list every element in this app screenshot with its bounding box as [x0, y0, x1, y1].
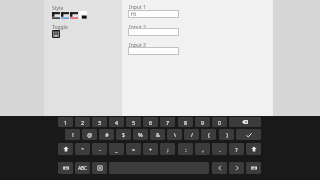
- staticText: !: [72, 131, 74, 138]
- staticText: -: [99, 146, 101, 153]
- button[interactable]: .: [212, 143, 227, 155]
- staticText: +: [149, 146, 152, 153]
- button[interactable]: ABC: [75, 162, 90, 174]
- staticText: %: [138, 131, 143, 138]
- staticText: 4: [115, 119, 118, 126]
- button[interactable]: Text colour: [52, 11, 60, 19]
- staticText: 0: [218, 119, 221, 126]
- staticText: :: [185, 146, 187, 153]
- button[interactable]: Backspace: [229, 117, 261, 127]
- button[interactable]: !: [65, 129, 80, 140]
- staticText: .: [219, 146, 221, 153]
- button[interactable]: 6: [143, 117, 158, 127]
- staticText: 2: [81, 119, 84, 126]
- button[interactable]: Text colour: [61, 11, 69, 19]
- staticText: Input 1: [129, 4, 146, 11]
- button[interactable]: (: [201, 129, 216, 140]
- button[interactable]: Hi: [128, 10, 179, 18]
- staticText: @: [87, 131, 92, 138]
- staticText: #: [105, 131, 109, 138]
- button[interactable]: 1: [58, 117, 73, 127]
- staticText: Style: [52, 5, 64, 12]
- button[interactable]: Highlight colour: [79, 11, 87, 19]
- button[interactable]: Shift: [246, 143, 261, 155]
- staticText: 9: [201, 119, 204, 126]
- staticText: (: [208, 131, 210, 138]
- staticText: Input 3: [129, 42, 146, 49]
- staticText: 6: [149, 119, 152, 126]
- staticText: 1: [64, 119, 67, 126]
- staticText: \: [174, 131, 176, 138]
- button[interactable]: #: [99, 129, 114, 140]
- button[interactable]: ,: [195, 143, 210, 155]
- button[interactable]: ": [75, 143, 90, 155]
- button[interactable]: -: [92, 143, 107, 155]
- button[interactable]: Text colour: [70, 11, 78, 19]
- staticText: 3: [98, 119, 101, 126]
- staticText: ,: [202, 146, 204, 153]
- button[interactable]: 4: [109, 117, 124, 127]
- button[interactable]: Move cursor right: [229, 162, 244, 174]
- staticText: Input 2: [129, 24, 146, 31]
- button[interactable]: &: [150, 129, 165, 140]
- staticText: =: [132, 146, 135, 153]
- button[interactable]: $: [116, 129, 131, 140]
- button[interactable]: [128, 28, 179, 36]
- button[interactable]: Shift: [58, 143, 73, 155]
- button[interactable]: Move cursor left: [212, 162, 227, 174]
- button[interactable]: +: [143, 143, 158, 155]
- button[interactable]: [128, 47, 179, 55]
- staticText: &: [156, 131, 160, 138]
- button[interactable]: @: [82, 129, 97, 140]
- button[interactable]: 5: [126, 117, 141, 127]
- button[interactable]: Toggle keyboard: [52, 30, 60, 38]
- staticText: /: [191, 131, 193, 138]
- staticText: Toggle: [52, 24, 68, 31]
- staticText: 5: [132, 119, 135, 126]
- button[interactable]: 3: [92, 117, 107, 127]
- button[interactable]: /: [184, 129, 199, 140]
- staticText: _: [115, 146, 118, 153]
- staticText: 8: [184, 119, 187, 126]
- button[interactable]: Enter: [236, 129, 261, 140]
- button[interactable]: 2: [75, 117, 90, 127]
- button[interactable]: ;: [160, 143, 175, 155]
- button[interactable]: Change keyboard: [58, 162, 73, 174]
- button[interactable]: Emoji: [92, 162, 107, 174]
- button[interactable]: \: [167, 129, 182, 140]
- button[interactable]: ): [219, 129, 234, 140]
- staticText: ?: [235, 146, 238, 153]
- staticText: 7: [166, 119, 169, 126]
- button[interactable]: 0: [212, 117, 227, 127]
- button[interactable]: _: [109, 143, 124, 155]
- button[interactable]: %: [133, 129, 148, 140]
- button[interactable]: ?: [229, 143, 244, 155]
- staticText: $: [122, 131, 125, 138]
- staticText: ": [81, 146, 84, 153]
- button[interactable]: 7: [160, 117, 175, 127]
- button[interactable]: Hide keyboard: [246, 162, 261, 174]
- button[interactable]: =: [126, 143, 141, 155]
- button[interactable]: 9: [195, 117, 210, 127]
- staticText: ;: [167, 146, 169, 153]
- staticText: ABC: [78, 165, 87, 171]
- button[interactable]: 8: [178, 117, 193, 127]
- staticText: ): [226, 131, 228, 138]
- staticText: Hi: [131, 11, 136, 18]
- button[interactable]: :: [178, 143, 193, 155]
